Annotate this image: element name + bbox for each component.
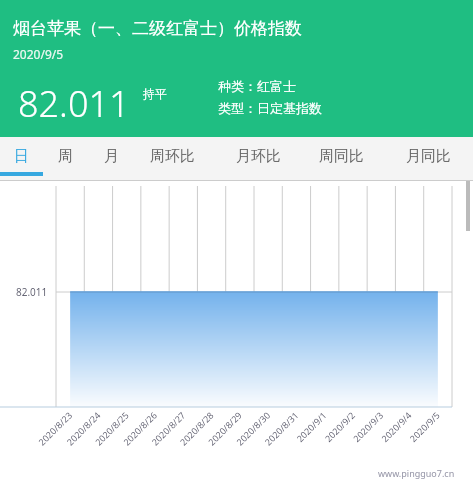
button[interactable]: 月 [98, 137, 124, 175]
staticText: 月同比 [406, 147, 451, 166]
staticText: 周环比 [150, 147, 195, 166]
staticText: 持平 [143, 86, 167, 101]
staticText: 82.011 [18, 79, 130, 128]
button[interactable]: 日 [8, 137, 34, 175]
staticText: 周同比 [319, 147, 364, 166]
staticText: 烟台苹果（一、二级红富士）价格指数 [13, 18, 302, 39]
staticText: 周 [58, 147, 73, 166]
button[interactable]: 月环比 [230, 137, 286, 175]
staticText: 日 [14, 147, 29, 166]
button[interactable]: 周环比 [144, 137, 200, 175]
staticText: 月环比 [236, 147, 281, 166]
button[interactable]: 月同比 [400, 137, 456, 175]
staticText: 月 [104, 147, 119, 166]
button[interactable]: 周 [52, 137, 78, 175]
button[interactable]: 周同比 [313, 137, 369, 175]
staticText: 种类：红富士 [218, 78, 296, 94]
staticText: 2020/9/5 [13, 46, 64, 62]
staticText: 类型：日定基指数 [218, 100, 322, 116]
